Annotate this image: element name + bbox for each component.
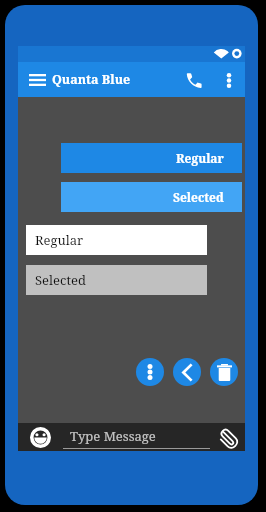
button[interactable]: Regular xyxy=(26,225,207,255)
button[interactable]: Attach file xyxy=(214,423,243,451)
staticText: Selected xyxy=(35,271,86,289)
staticText: Regular xyxy=(35,231,84,249)
button[interactable]: Back xyxy=(173,358,201,386)
button[interactable]: More actions xyxy=(136,358,164,386)
staticText: Type Message xyxy=(70,427,156,445)
button[interactable]: Selected xyxy=(26,265,207,295)
button[interactable]: Open navigation menu xyxy=(25,68,49,92)
staticText: Selected xyxy=(173,189,224,205)
staticText: Regular xyxy=(176,150,224,166)
button[interactable]: Delete xyxy=(210,358,238,386)
button[interactable]: Selected xyxy=(61,182,242,212)
button[interactable]: Emoji xyxy=(29,426,51,448)
staticText: Quanta Blue xyxy=(52,71,131,88)
button[interactable]: Regular xyxy=(61,143,242,173)
button[interactable]: Call xyxy=(181,67,207,93)
button[interactable]: Type Message xyxy=(63,424,210,450)
button[interactable]: More options xyxy=(218,69,240,91)
